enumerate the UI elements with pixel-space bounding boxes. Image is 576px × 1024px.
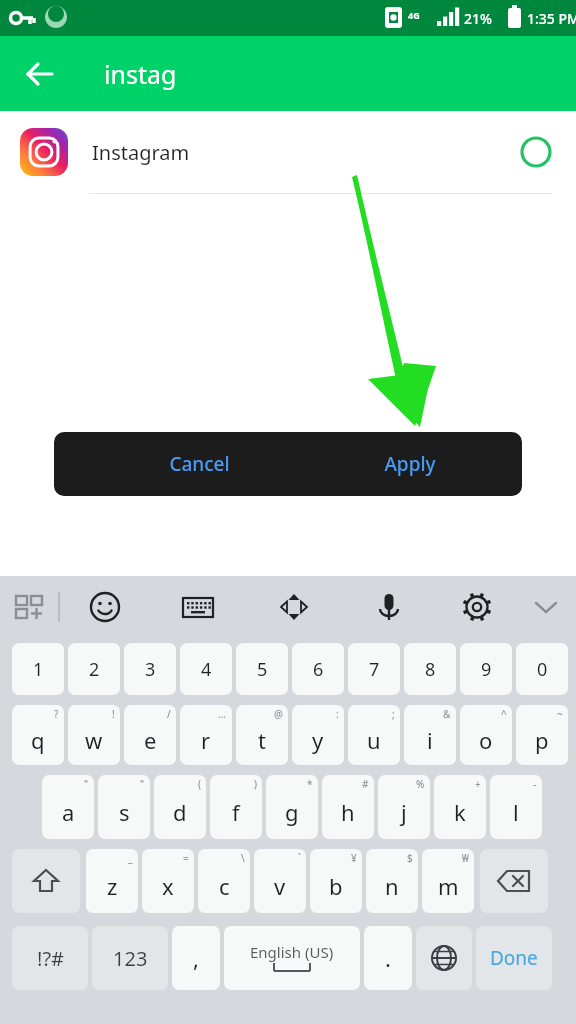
button[interactable]: + <box>434 775 486 839</box>
button[interactable]: ~ <box>516 705 568 765</box>
staticText: 8 <box>425 657 436 682</box>
staticText: ... <box>218 707 227 721</box>
button[interactable]: % <box>378 775 430 839</box>
button[interactable]: Backspace <box>480 849 548 913</box>
staticText: , <box>193 943 199 973</box>
staticText: # <box>362 777 369 791</box>
button[interactable]: English (US) <box>224 926 360 990</box>
staticText: \ <box>241 851 245 865</box>
staticText: . <box>385 943 391 973</box>
button[interactable]: = <box>142 849 194 913</box>
button[interactable]: 6 <box>292 643 344 695</box>
button[interactable]: : <box>292 705 344 765</box>
staticText: _ <box>128 851 133 865</box>
staticText: 1 <box>33 657 44 682</box>
staticText: r <box>201 725 211 755</box>
button[interactable]: " <box>42 775 94 839</box>
staticText: u <box>367 725 381 755</box>
button[interactable]: Hide keyboard <box>518 576 574 638</box>
button[interactable]: !?# <box>12 926 88 990</box>
staticText: 4G <box>408 9 420 21</box>
staticText: + <box>475 777 481 791</box>
staticText: Instagram <box>92 139 190 166</box>
button[interactable]: Back <box>16 50 64 98</box>
button[interactable]: ? <box>12 705 64 765</box>
button[interactable]: Add shortcut <box>0 576 58 638</box>
button[interactable]: _ <box>86 849 138 913</box>
button[interactable]: " <box>98 775 150 839</box>
staticText: q <box>31 725 45 755</box>
staticText: g <box>285 797 299 827</box>
button[interactable]: * <box>266 775 318 839</box>
staticText: 9 <box>481 657 492 682</box>
button[interactable]: 0 <box>516 643 568 695</box>
button[interactable]: ` <box>254 849 306 913</box>
button[interactable]: Voice input <box>342 576 436 638</box>
button[interactable]: Move cursor <box>246 576 342 638</box>
staticText: w <box>85 725 103 755</box>
staticText: instag <box>104 57 177 91</box>
button[interactable]: Shift <box>12 849 80 913</box>
staticText: 5 <box>257 657 268 682</box>
button[interactable]: 7 <box>348 643 400 695</box>
button[interactable]: & <box>404 705 456 765</box>
staticText: e <box>144 725 157 755</box>
staticText: t <box>258 725 266 755</box>
button[interactable]: Done <box>476 926 552 990</box>
button[interactable]: ^ <box>460 705 512 765</box>
staticText: - <box>533 777 537 791</box>
button[interactable]: $ <box>366 849 418 913</box>
staticText: Cancel <box>169 451 230 477</box>
staticText: d <box>173 797 187 827</box>
button[interactable]: ₩ <box>422 849 474 913</box>
button[interactable]: / <box>124 705 176 765</box>
button[interactable]: 2 <box>68 643 120 695</box>
button[interactable]: Cancel <box>114 432 284 496</box>
staticText: ) <box>254 777 257 791</box>
button[interactable]: Emoji <box>60 576 150 638</box>
staticText: z <box>107 871 118 901</box>
button[interactable]: Instagram <box>0 111 576 193</box>
button[interactable]: 4 <box>180 643 232 695</box>
button[interactable]: ) <box>210 775 262 839</box>
button[interactable]: . <box>364 926 412 990</box>
staticText: @ <box>274 707 283 721</box>
staticText: 4 <box>201 657 212 682</box>
button[interactable]: ! <box>68 705 120 765</box>
button[interactable]: ... <box>180 705 232 765</box>
staticText: 21% <box>464 9 492 28</box>
button[interactable]: Apply <box>330 432 490 496</box>
button[interactable]: 9 <box>460 643 512 695</box>
button[interactable]: Settings <box>436 576 518 638</box>
staticText: o <box>479 725 493 755</box>
staticText: 123 <box>113 945 148 972</box>
staticText: s <box>119 797 130 827</box>
button[interactable]: 5 <box>236 643 288 695</box>
button[interactable]: \ <box>198 849 250 913</box>
staticText: 1:35 PM <box>527 9 576 28</box>
button[interactable]: 123 <box>92 926 168 990</box>
button[interactable]: Change language <box>416 926 472 990</box>
staticText: ! <box>112 707 115 721</box>
staticText: 0 <box>537 657 548 682</box>
button[interactable]: 3 <box>124 643 176 695</box>
staticText: $ <box>407 851 413 865</box>
button[interactable]: 1 <box>12 643 64 695</box>
button[interactable]: Keyboard layout <box>150 576 246 638</box>
staticText: !?# <box>37 945 64 972</box>
button[interactable]: 8 <box>404 643 456 695</box>
staticText: a <box>62 797 75 827</box>
staticText: 2 <box>89 657 100 682</box>
staticText: ( <box>198 777 201 791</box>
staticText: i <box>427 725 433 755</box>
button[interactable]: ¥ <box>310 849 362 913</box>
button[interactable]: - <box>490 775 542 839</box>
button[interactable]: # <box>322 775 374 839</box>
button[interactable]: Select Instagram <box>512 128 560 176</box>
staticText: ` <box>298 851 301 865</box>
button[interactable]: ( <box>154 775 206 839</box>
staticText: m <box>438 871 459 901</box>
button[interactable]: , <box>172 926 220 990</box>
button[interactable]: ; <box>348 705 400 765</box>
button[interactable]: @ <box>236 705 288 765</box>
